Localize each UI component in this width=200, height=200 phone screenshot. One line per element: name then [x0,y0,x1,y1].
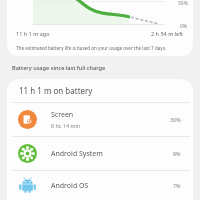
staticText: 8% [173,150,181,157]
button[interactable]: Android OS battery usage [7,171,193,200]
other: Android System battery usage [18,144,37,163]
staticText: 7% [173,182,181,189]
other: Screen battery usage [18,110,37,129]
button[interactable]: Android System battery usage [7,137,193,170]
staticText: 11 h 1 m ago [16,30,50,37]
staticText: 2 h 54 m left [151,30,184,37]
staticText: 6 hr, 14 min [51,122,81,129]
button[interactable]: 11 h 1 m on battery [7,79,193,102]
other: Android OS battery usage [18,176,37,195]
staticText: Android OS [51,181,89,191]
staticText: 11 h 1 m on battery [19,85,93,96]
staticText: The estimated battery life is based on y… [16,45,167,51]
staticText: 50% [178,0,188,7]
staticText: Android System [51,149,103,159]
staticText: 30% [170,116,181,123]
staticText: Battery usage since last full charge [12,64,106,72]
staticText: Screen [51,110,74,120]
button[interactable]: Screen battery usage [7,103,193,136]
staticText: 0% [180,23,188,30]
button[interactable]: 50% [7,0,193,56]
